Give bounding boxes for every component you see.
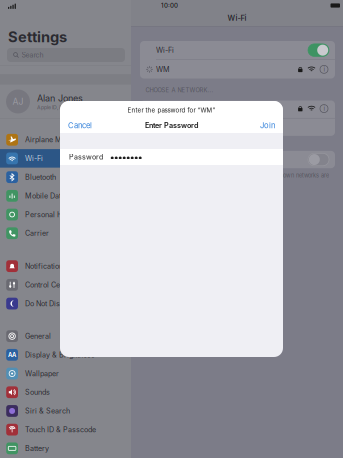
- staticText: ••••••••: [110, 151, 142, 163]
- staticText: WM: [156, 65, 170, 74]
- button[interactable]: Bluetooth: [0, 168, 131, 186]
- button[interactable]: Personal Hotspot: [0, 205, 131, 224]
- button[interactable]: Control Centre: [0, 275, 131, 294]
- staticText: Cancel: [68, 121, 92, 130]
- button[interactable]: WM: [140, 60, 335, 79]
- button[interactable]: Touch ID & Passcode: [0, 420, 131, 439]
- staticText: General: [25, 332, 51, 340]
- button[interactable]: Guest: [140, 99, 335, 118]
- staticText: Settings: [8, 28, 67, 46]
- button[interactable]: Notifications: [0, 257, 131, 275]
- staticText: Enter Password: [145, 121, 198, 130]
- button[interactable]: Airplane Mode: [0, 130, 131, 149]
- staticText: AJ: [12, 96, 23, 107]
- button[interactable]: General: [0, 327, 131, 345]
- button[interactable]: Wi-Fi: [0, 149, 131, 168]
- staticText: Join: [260, 121, 275, 130]
- staticText: Notifications: [25, 262, 67, 270]
- staticText: CHOOSE A NETWORK...: [145, 86, 213, 94]
- button[interactable]: Password: [60, 149, 283, 165]
- button[interactable]: Mobile Data: [0, 186, 131, 205]
- button[interactable]: Other…: [140, 118, 335, 137]
- button[interactable]: AJ: [0, 85, 131, 118]
- button[interactable]: Battery: [0, 439, 131, 458]
- staticText: Sounds: [25, 388, 50, 397]
- staticText: Wi-Fi: [25, 154, 43, 163]
- staticText: Display & Brightness: [25, 350, 95, 359]
- staticText: Touch ID & Passcode: [25, 425, 96, 434]
- staticText: 10:00: [161, 2, 178, 9]
- staticText: Apple ID, iCloud, iTunes & App Store: [37, 104, 121, 110]
- staticText: Personal Hotspot: [25, 210, 82, 219]
- button[interactable]: Join: [235, 118, 275, 133]
- staticText: Siri & Search: [25, 407, 70, 415]
- button[interactable]: Sounds: [0, 383, 131, 402]
- staticText: Known networks will be joined automatica…: [147, 172, 329, 186]
- staticText: Control Centre: [25, 280, 73, 289]
- staticText: Wi-Fi: [227, 13, 246, 22]
- staticText: Wallpaper: [25, 369, 59, 378]
- staticText: Password: [69, 153, 103, 161]
- staticText: Bluetooth: [25, 173, 56, 181]
- staticText: AA: [8, 351, 16, 358]
- button[interactable]: Cancel: [68, 118, 108, 133]
- staticText: Do Not Disturb: [25, 299, 73, 308]
- staticText: Wi-Fi: [156, 46, 174, 54]
- button[interactable]: Wi-Fi: [140, 41, 335, 59]
- staticText: Battery: [25, 444, 49, 453]
- staticText: Carrier: [25, 229, 49, 238]
- button[interactable]: Wallpaper: [0, 364, 131, 383]
- button[interactable]: Do Not Disturb: [0, 294, 131, 313]
- staticText: Guest: [156, 104, 175, 113]
- button[interactable]: AA: [0, 345, 131, 364]
- staticText: Airplane Mode: [25, 135, 74, 144]
- staticText: Mobile Data: [25, 191, 65, 200]
- staticText: Search: [21, 51, 43, 59]
- button[interactable]: Ask to Join Networks: [140, 151, 335, 168]
- staticText: Alan Jones: [37, 93, 83, 104]
- staticText: Other…: [156, 123, 180, 132]
- staticText: Enter the password for “WM”: [127, 106, 215, 114]
- button[interactable]: Carrier: [0, 224, 131, 243]
- button[interactable]: Siri & Search: [0, 402, 131, 420]
